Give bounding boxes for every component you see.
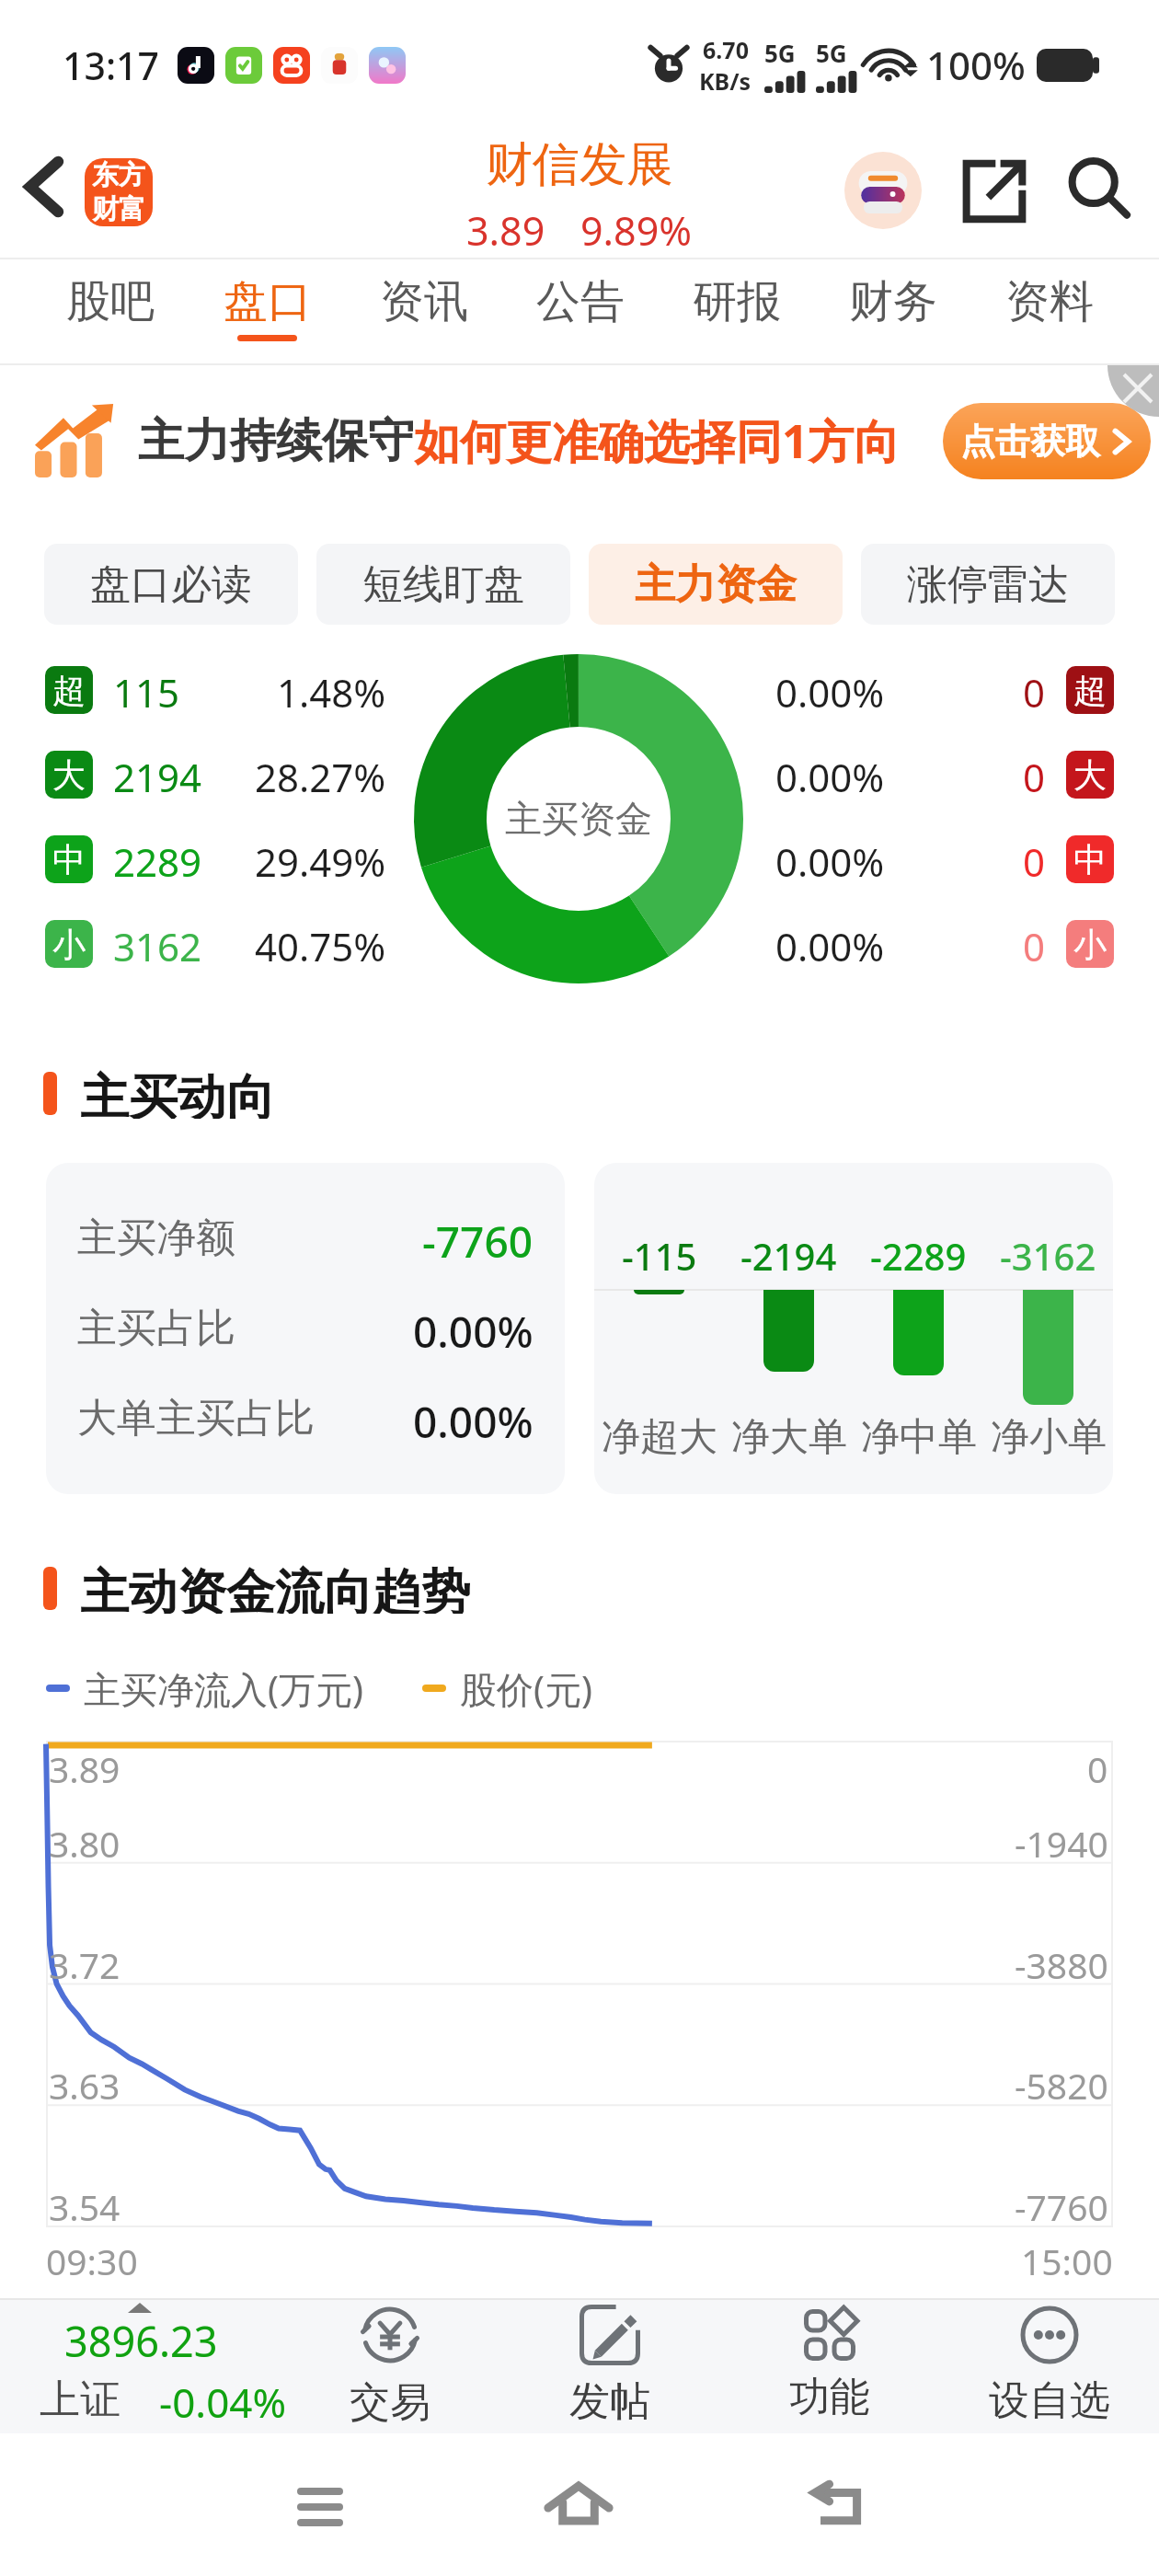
staticText: 主买净流入(万元) (84, 1663, 363, 1714)
button[interactable]: 主力资金 (589, 544, 843, 625)
staticText: 28.27% (255, 751, 386, 799)
staticText: 0.00% (413, 1393, 534, 1444)
staticText: 公告 (536, 274, 625, 329)
staticText: 0.00% (775, 835, 885, 883)
button[interactable]: Home (542, 2467, 615, 2540)
button[interactable]: Share (958, 155, 1031, 228)
staticText: 3.72 (49, 1940, 120, 1989)
button[interactable]: 涨停雷达 (861, 544, 1115, 625)
button[interactable]: -115 (594, 1163, 1113, 1494)
staticText: 5G (764, 37, 796, 69)
staticText: 2289 (113, 835, 202, 883)
staticText: -2289 (870, 1231, 967, 1279)
staticText: 3896.23 (64, 2313, 218, 2369)
button[interactable]: AI assistant (844, 152, 922, 229)
staticText: 点击获取 (960, 420, 1100, 464)
button[interactable]: 股吧 (31, 259, 189, 365)
staticText: 净大单 (731, 1413, 847, 1462)
staticText: 100% (926, 39, 1026, 91)
staticText: 交易 (350, 2377, 430, 2428)
staticText: 超 (52, 670, 86, 711)
staticText: -7760 (422, 1213, 534, 1264)
staticText: 股吧 (66, 274, 155, 329)
button[interactable]: Back (7, 150, 81, 224)
button[interactable]: 公告 (502, 259, 659, 365)
button[interactable]: 主力持续保守 (35, 365, 1151, 516)
staticText: 研报 (693, 274, 781, 329)
button[interactable]: 资料 (971, 259, 1128, 365)
button[interactable]: 财务 (815, 259, 971, 365)
staticText: 资讯 (380, 274, 468, 329)
staticText: 主买净额 (77, 1213, 235, 1263)
button[interactable]: 发帖 (499, 2298, 719, 2433)
staticText: 如何更准确选择同1方向 (414, 409, 901, 472)
staticText: 0.00% (775, 920, 885, 968)
staticText: 0.00% (775, 666, 885, 714)
staticText: 0 (1023, 666, 1046, 714)
button[interactable]: Search (1062, 152, 1136, 225)
staticText: 小 (1073, 924, 1107, 965)
staticText: 净中单 (861, 1413, 977, 1462)
button[interactable]: 点击获取 (943, 403, 1151, 479)
staticText: 净小单 (991, 1413, 1107, 1462)
staticText: -3880 (1015, 1940, 1108, 1989)
button[interactable]: 短线盯盘 (316, 544, 570, 625)
staticText: 0 (1023, 920, 1046, 968)
staticText: 29.49% (255, 835, 386, 883)
staticText: 净超大 (602, 1413, 717, 1462)
staticText: 小 (52, 924, 86, 965)
staticText: 09:30 (46, 2237, 138, 2285)
staticText: 资料 (1005, 274, 1094, 329)
button[interactable]: 3896.23 (0, 2298, 280, 2433)
staticText: 财务 (849, 274, 937, 329)
staticText: 5G (816, 37, 847, 69)
staticText: 40.75% (255, 920, 386, 968)
staticText: 115 (113, 666, 180, 714)
staticText: 主动资金流向趋势 (80, 1562, 470, 1614)
staticText: 15:00 (1021, 2237, 1113, 2285)
staticText: 6.70 (703, 34, 749, 65)
staticText: 大 (52, 754, 86, 796)
staticText: 3162 (113, 920, 202, 968)
button[interactable]: 盘口必读 (44, 544, 298, 625)
staticText: 东方 (92, 158, 145, 192)
staticText: 大单主买占比 (77, 1394, 315, 1443)
staticText: 3.54 (49, 2182, 120, 2231)
button[interactable]: 设自选 (939, 2298, 1159, 2433)
staticText: 3.89 (466, 203, 545, 258)
staticText: -2194 (740, 1231, 837, 1279)
button[interactable]: 交易 (280, 2298, 499, 2433)
staticText: 盘口 (224, 274, 312, 329)
staticText: 主买占比 (77, 1304, 235, 1353)
button[interactable]: 研报 (659, 259, 815, 365)
button[interactable]: Recents (283, 2470, 357, 2544)
staticText: 3.89 (49, 1744, 120, 1793)
staticText: -1940 (1015, 1819, 1108, 1868)
button[interactable]: Close ad (1107, 365, 1159, 417)
staticText: 主力持续保守 (138, 412, 414, 470)
staticText: 盘口必读 (90, 559, 252, 610)
button[interactable]: 资讯 (346, 259, 502, 365)
staticText: -0.04% (159, 2375, 287, 2430)
button[interactable]: 主买净额 (46, 1163, 565, 1494)
staticText: 短线盯盘 (362, 559, 524, 610)
staticText: 财富 (92, 192, 145, 226)
staticText: 股价(元) (460, 1663, 592, 1714)
staticText: 主买资金 (505, 796, 652, 842)
staticText: 0.00% (413, 1303, 534, 1354)
staticText: 3.80 (49, 1819, 120, 1868)
button[interactable]: East Money (85, 158, 153, 226)
staticText: 1.48% (277, 666, 386, 714)
staticText: 0 (1023, 835, 1046, 883)
staticText: 中 (1073, 839, 1107, 880)
button[interactable]: 功能 (719, 2298, 939, 2433)
staticText: 功能 (789, 2372, 870, 2422)
staticText: -3162 (1000, 1231, 1096, 1279)
button[interactable]: Back (800, 2467, 874, 2540)
button[interactable]: 盘口 (189, 259, 346, 365)
staticText: 涨停雷达 (907, 559, 1069, 610)
staticText: 上证 (40, 2375, 120, 2425)
staticText: 中 (52, 839, 86, 880)
staticText: 大 (1073, 754, 1107, 796)
staticText: -5820 (1015, 2061, 1108, 2110)
